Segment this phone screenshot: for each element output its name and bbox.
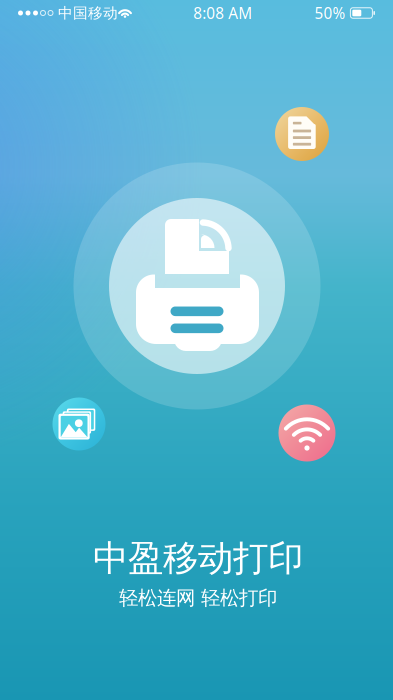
button[interactable]: Photos [52,397,105,450]
staticText: 8:08 AM [193,3,252,23]
staticText: 轻松连网 轻松打印 [119,586,277,610]
staticText: 中盈移动打印 [93,536,303,581]
staticText: 中国移动 [58,4,118,22]
staticText: 50% [314,3,345,23]
button[interactable]: Wi-Fi [278,404,335,461]
button[interactable]: Documents [275,107,329,161]
